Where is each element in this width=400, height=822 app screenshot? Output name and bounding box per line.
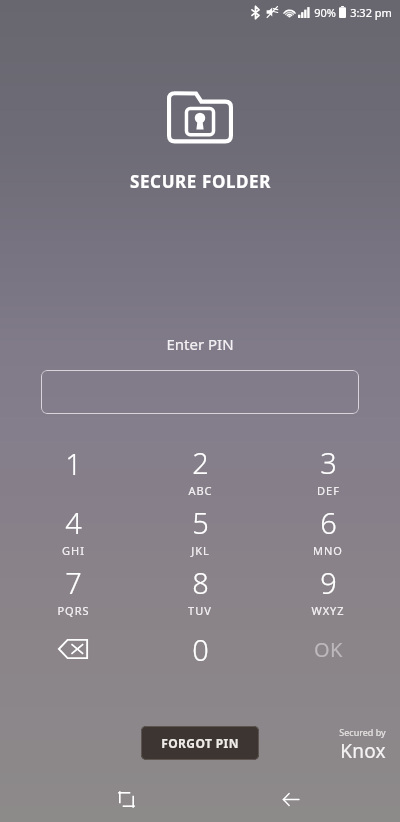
- staticText: 90%: [314, 5, 336, 20]
- staticText: JKL: [191, 543, 210, 558]
- staticText: 0: [192, 630, 209, 669]
- button[interactable]: 9: [273, 560, 383, 620]
- staticText: 4: [65, 503, 82, 542]
- staticText: 9: [320, 563, 337, 602]
- staticText: DEF: [317, 483, 340, 498]
- button[interactable]: 4: [18, 500, 128, 560]
- button[interactable]: 0: [145, 620, 255, 678]
- staticText: ABC: [188, 483, 213, 498]
- button[interactable]: Backspace: [18, 620, 128, 678]
- staticText: TUV: [188, 603, 212, 618]
- staticText: PQRS: [57, 603, 90, 618]
- staticText: WXYZ: [311, 603, 345, 618]
- staticText: FORGOT PIN: [161, 735, 239, 751]
- button[interactable]: OK: [273, 620, 383, 678]
- button[interactable]: 5: [145, 500, 255, 560]
- button[interactable]: 3: [273, 440, 383, 500]
- other: Secure Folder: [167, 88, 233, 146]
- staticText: 5: [192, 503, 209, 542]
- button[interactable]: FORGOT PIN: [141, 726, 259, 760]
- button[interactable]: 6: [273, 500, 383, 560]
- staticText: 3: [320, 443, 337, 482]
- staticText: Knox: [340, 738, 386, 764]
- staticText: 3:32 pm: [350, 5, 392, 20]
- staticText: Secured by: [339, 726, 386, 738]
- button[interactable]: 7: [18, 560, 128, 620]
- staticText: 7: [65, 563, 82, 602]
- staticText: GHI: [62, 543, 85, 558]
- button[interactable]: Recents: [103, 776, 149, 822]
- button[interactable]: 8: [145, 560, 255, 620]
- button[interactable]: 1: [18, 440, 128, 500]
- staticText: 2: [192, 443, 209, 482]
- staticText: MNO: [313, 543, 343, 558]
- staticText: SECURE FOLDER: [130, 170, 271, 193]
- staticText: 6: [320, 503, 337, 542]
- staticText: Enter PIN: [166, 334, 234, 354]
- staticText: 8: [192, 563, 209, 602]
- staticText: OK: [314, 636, 343, 663]
- staticText: 1: [65, 444, 82, 483]
- button[interactable]: Back: [267, 776, 313, 822]
- button[interactable]: 2: [145, 440, 255, 500]
- button[interactable]: [41, 370, 359, 414]
